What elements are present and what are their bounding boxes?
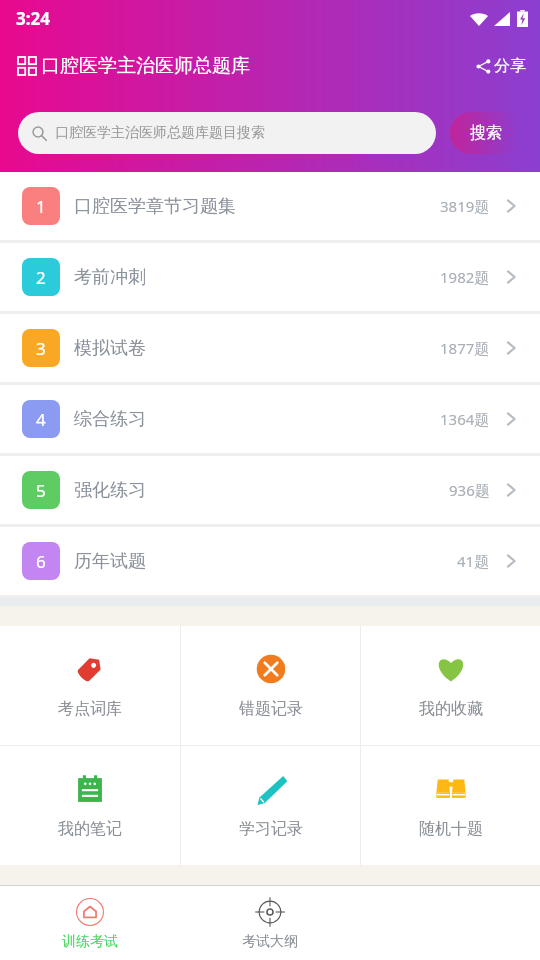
staticText: 考试大纲 (242, 933, 298, 951)
staticText: 模拟试卷 (74, 337, 146, 360)
staticText: 历年试题 (74, 550, 146, 573)
staticText: 口腔医学主治医师总题库 (41, 54, 250, 78)
button[interactable]: 错题记录 (181, 626, 360, 745)
button[interactable]: 4 (0, 385, 540, 453)
button[interactable]: 考点词库 (0, 626, 180, 745)
staticText: 搜索 (470, 123, 502, 143)
button[interactable]: 训练考试 (0, 886, 180, 960)
staticText: 2 (36, 266, 46, 289)
other: Share (476, 59, 491, 74)
staticText: 分享 (494, 56, 526, 76)
button[interactable]: 随机十题 (361, 746, 540, 865)
button[interactable]: Share (462, 48, 540, 84)
button[interactable]: 6 (0, 527, 540, 595)
staticText: 考前冲刺 (74, 266, 146, 289)
staticText: 口腔医学章节习题集 (74, 195, 236, 218)
staticText: 1 (36, 195, 46, 218)
button[interactable]: 考试大纲 (180, 886, 360, 960)
staticText: 训练考试 (62, 933, 118, 951)
button[interactable]: 我的收藏 (361, 626, 540, 745)
staticText: 3 (36, 337, 46, 360)
staticText: 综合练习 (74, 408, 146, 431)
staticText: 1982题 (440, 267, 490, 287)
staticText: 1364题 (440, 409, 490, 429)
button[interactable]: 学习记录 (181, 746, 360, 865)
button[interactable]: 口腔医学主治医师总题库题目搜索 (18, 112, 436, 154)
staticText: 随机十题 (419, 819, 483, 839)
staticText: 4 (36, 408, 46, 431)
button[interactable]: 2 (0, 243, 540, 311)
staticText: 3819题 (440, 196, 490, 216)
staticText: 我的笔记 (58, 819, 122, 839)
staticText: 6 (36, 550, 46, 573)
staticText: 错题记录 (239, 699, 303, 719)
button[interactable]: 3 (0, 314, 540, 382)
button[interactable]: 5 (0, 456, 540, 524)
staticText: 1877题 (440, 338, 490, 358)
staticText: 41题 (457, 551, 490, 571)
staticText: 5 (36, 479, 46, 502)
staticText: 口腔医学主治医师总题库题目搜索 (55, 124, 265, 142)
staticText: 3:24 (16, 7, 50, 30)
staticText: 我的收藏 (419, 699, 483, 719)
staticText: 学习记录 (239, 819, 303, 839)
staticText: 考点词库 (58, 699, 122, 719)
staticText: 强化练习 (74, 479, 146, 502)
staticText: 936题 (449, 480, 490, 500)
button[interactable]: 1 (0, 172, 540, 240)
button[interactable]: 搜索 (450, 112, 522, 154)
button[interactable]: 我的笔记 (0, 746, 180, 865)
